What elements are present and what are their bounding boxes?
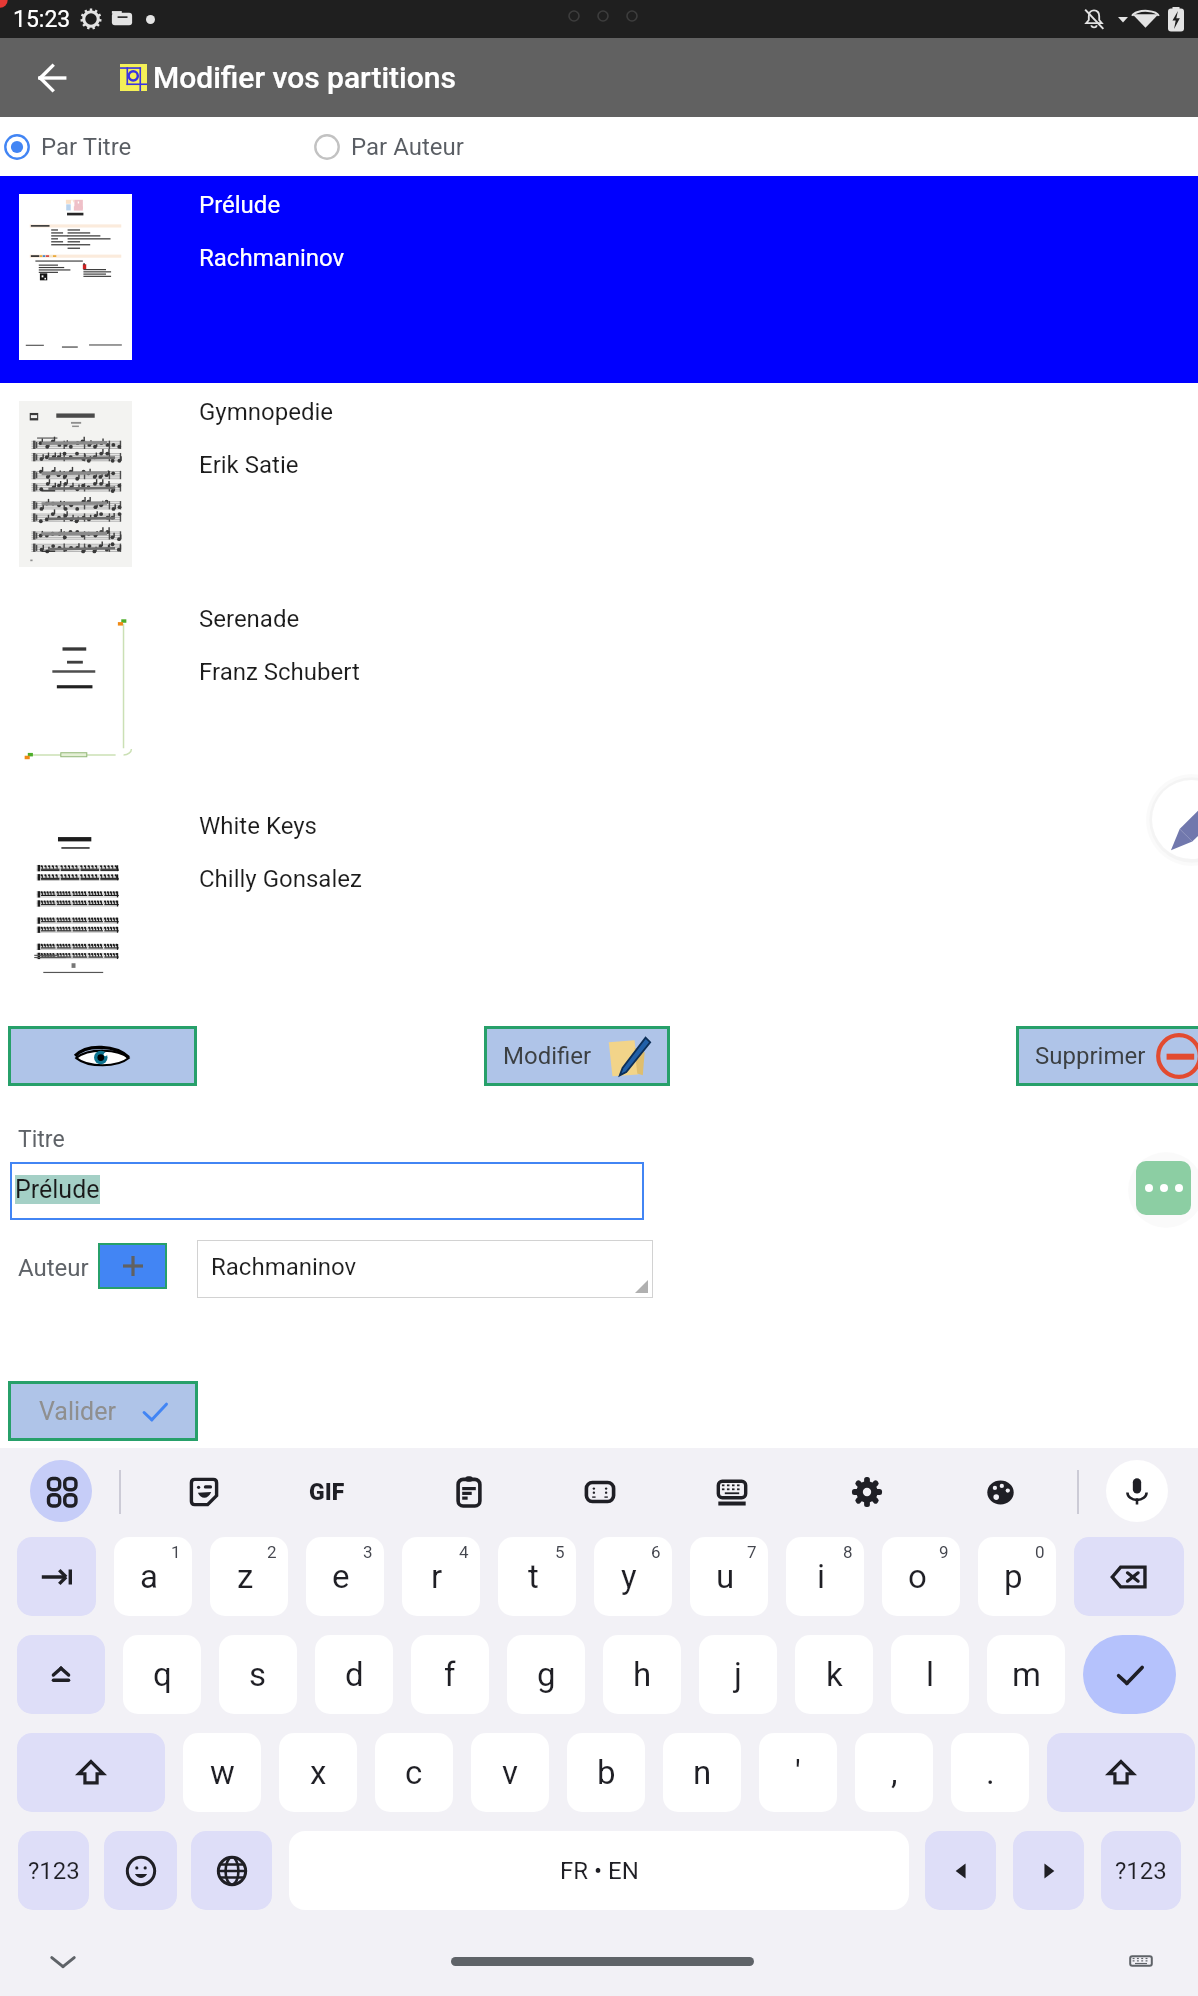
button[interactable]: Maj [1047,1733,1195,1812]
staticText: e [332,1557,350,1596]
staticText: 9 [939,1542,949,1562]
staticText: ?123 [28,1857,80,1885]
staticText: b [597,1753,616,1792]
button[interactable]: Changer de clavier [1126,1946,1156,1976]
staticText: 15:23 [13,6,71,33]
button[interactable]: Prélude [0,176,1198,383]
button[interactable]: Majuscules [17,1635,105,1714]
button[interactable]: t [498,1537,576,1616]
staticText: Serenade [199,605,300,633]
button[interactable]: White Keys [0,797,1198,1004]
staticText: Auteur [18,1254,89,1282]
button[interactable]: Paramètres [845,1470,889,1514]
button[interactable]: Tabulation [17,1537,96,1616]
button[interactable]: Mode clavier [710,1470,754,1514]
button[interactable]: Rachmaninov [197,1240,653,1298]
staticText: Franz Schubert [199,658,360,686]
button[interactable]: a [114,1537,192,1616]
button[interactable]: GIF [309,1479,345,1506]
button[interactable]: Serenade [0,590,1198,797]
staticText: c [405,1753,423,1792]
button[interactable]: y [594,1537,672,1616]
staticText: ?123 [1115,1857,1167,1885]
button[interactable]: Retour [0,38,104,117]
button[interactable]: b [567,1733,645,1812]
button[interactable]: j [699,1635,777,1714]
button[interactable]: Voir [8,1026,197,1086]
button[interactable]: u [690,1537,768,1616]
button[interactable]: i [786,1537,864,1616]
staticText: Titre [18,1126,65,1153]
button[interactable]: Gauche [925,1831,996,1910]
button[interactable]: w [183,1733,261,1812]
button[interactable]: Par Auteur [314,117,464,176]
button[interactable]: r [402,1537,480,1616]
staticText: 2 [267,1542,277,1562]
button[interactable]: s [219,1635,297,1714]
button[interactable]: c [375,1733,453,1812]
button[interactable]: ?123 [18,1831,89,1910]
staticText: 4 [459,1542,469,1562]
staticText: w [210,1753,235,1792]
button[interactable]: Autocollants [182,1470,226,1514]
button[interactable]: Droite [1013,1831,1084,1910]
staticText: g [537,1655,556,1694]
button[interactable]: h [603,1635,681,1714]
staticText: Supprimer [1035,1042,1146,1070]
button[interactable]: n [663,1733,741,1812]
staticText: Prélude [199,191,281,219]
staticText: i [817,1557,826,1596]
button[interactable]: Masquer le clavier [46,1944,80,1978]
button[interactable]: m [987,1635,1065,1714]
button[interactable]: Langue [191,1831,272,1910]
button[interactable]: f [411,1635,489,1714]
button[interactable]: Valider [8,1381,198,1441]
button[interactable]: Presse-papiers [447,1470,491,1514]
button[interactable]: x [279,1733,357,1812]
staticText: s [249,1655,267,1694]
button[interactable]: p [978,1537,1056,1616]
button[interactable]: Saisie vocale [1106,1460,1168,1522]
button[interactable]: Supprimer [1016,1026,1198,1086]
staticText: o [908,1557,927,1596]
button[interactable]: Gymnopedie [0,383,1198,590]
staticText: u [716,1557,735,1596]
button[interactable]: Modifier [484,1026,670,1086]
button[interactable]: Emoji [104,1831,177,1910]
button[interactable]: l [891,1635,969,1714]
staticText: q [153,1655,172,1694]
button[interactable]: v [471,1733,549,1812]
staticText: Rachmaninov [211,1253,357,1281]
button[interactable]: Thème [978,1470,1022,1514]
button[interactable]: Prélude [10,1162,644,1220]
button[interactable]: Ajouter auteur [98,1243,167,1289]
button[interactable]: Par Titre [0,117,132,176]
button[interactable]: q [123,1635,201,1714]
staticText: Par Titre [41,133,132,161]
button[interactable]: FR • EN [289,1831,909,1910]
staticText: Par Auteur [351,133,464,161]
staticText: GIF [309,1479,345,1506]
button[interactable]: z [210,1537,288,1616]
staticText: Modifier [503,1042,592,1070]
button[interactable]: k [795,1635,873,1714]
button[interactable]: . [951,1733,1029,1812]
button[interactable]: ?123 [1101,1831,1181,1910]
staticText: 7 [747,1542,757,1562]
button[interactable]: Dessiner [1152,780,1198,859]
button[interactable]: d [315,1635,393,1714]
button[interactable]: e [306,1537,384,1616]
button[interactable]: g [507,1635,585,1714]
button[interactable]: Entrée [1083,1635,1176,1714]
staticText: n [693,1753,712,1792]
button[interactable]: ' [759,1733,837,1812]
button[interactable]: Mode une main [578,1470,622,1514]
staticText: Gymnopedie [199,398,333,426]
button[interactable]: Applications [30,1460,92,1522]
button[interactable]: Retour arrière [1074,1537,1184,1616]
button[interactable]: Plus d'options [1136,1161,1191,1215]
button[interactable]: , [855,1733,933,1812]
button[interactable]: Maj [17,1733,165,1812]
staticText: 6 [651,1542,661,1562]
button[interactable]: o [882,1537,960,1616]
